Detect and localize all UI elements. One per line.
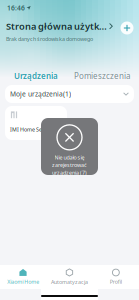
button[interactable]: Profil [93,265,139,289]
staticText: Strona główna użytko... [6,20,106,32]
button[interactable]: IMI Home Security Ca [5,106,67,140]
button[interactable]: Urządzenia [14,68,58,84]
staticText: 16:46 [7,4,25,12]
button[interactable]: Moje urządzenia(1) [5,85,134,103]
staticText: Profil [110,278,122,285]
staticText: Brak danych środowiska domowego [6,35,93,42]
staticText: urządzenia (7) [52,169,87,176]
staticText: Nie udało się [54,154,84,161]
staticText: Moje urządzenia(1) [10,90,71,98]
button[interactable]: Strona główna użytko... [6,20,113,32]
button[interactable]: Add home [119,20,135,36]
button[interactable]: Pomieszczenia [74,68,130,84]
staticText: Xiaomi Home [7,278,39,285]
staticText: zarejestrować [52,161,87,169]
staticText: Automatyzacja [51,278,88,285]
staticText: IMI Home Security Ca [10,126,63,133]
button[interactable]: Automatyzacja [46,265,93,289]
button[interactable]: Xiaomi Home [0,265,46,289]
staticText: Urządzenia [14,71,58,81]
staticText: Pomieszczenia [74,71,130,81]
